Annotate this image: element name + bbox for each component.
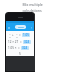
- button[interactable]: Menu: [7, 26, 10, 29]
- staticText: 5: [19, 52, 21, 56]
- staticText: calculations: [22, 8, 42, 13]
- staticText: 1.05 ×: [8, 46, 17, 50]
- staticText: 1: [9, 32, 11, 35]
- staticText: 1.05: [23, 33, 29, 37]
- staticText: 324: [22, 46, 28, 50]
- staticText: Mix multiple: [22, 2, 43, 7]
- staticText: =: [20, 40, 22, 44]
- button[interactable]: 12 × 27: [8, 40, 32, 44]
- staticText: =: [18, 46, 20, 50]
- staticText: 2: [9, 35, 11, 38]
- button[interactable]: 1: [8, 32, 32, 38]
- staticText: 324: [24, 40, 30, 44]
- staticText: +: [12, 33, 14, 37]
- button[interactable]: 1.05 ×: [8, 46, 32, 50]
- button[interactable]: More options: [30, 26, 33, 29]
- button[interactable]: Search: [15, 25, 26, 29]
- staticText: 12 × 27: [8, 40, 19, 44]
- staticText: 2: [16, 35, 18, 38]
- staticText: 1: [16, 32, 18, 35]
- staticText: =: [19, 33, 21, 37]
